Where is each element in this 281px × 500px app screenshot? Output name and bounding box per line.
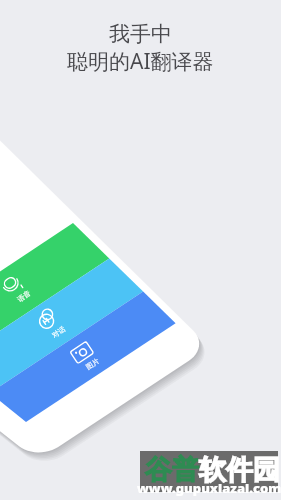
staticText: 我手中: [109, 21, 172, 47]
staticText: 谷普: [145, 453, 199, 487]
staticText: www.gupuxlazal.com: [137, 479, 281, 497]
staticText: 软件园: [199, 453, 280, 487]
staticText: 聪明的AI翻译器: [67, 47, 214, 76]
